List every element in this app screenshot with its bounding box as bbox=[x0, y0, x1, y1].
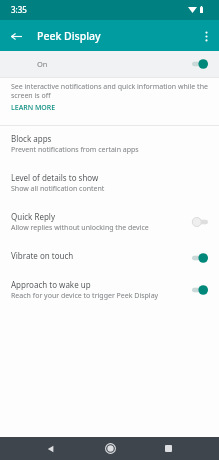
staticText: Prevent notifications from certain apps bbox=[11, 145, 139, 155]
staticText: Allow replies without unlocking the devi… bbox=[11, 223, 149, 233]
staticText: Approach to wake up bbox=[11, 279, 91, 290]
staticText: Show all notification content bbox=[11, 184, 105, 194]
button[interactable]: Navigate up bbox=[3, 23, 29, 49]
staticText: On bbox=[37, 59, 48, 69]
staticText: Vibrate on touch bbox=[11, 250, 74, 261]
button[interactable]: Back bbox=[31, 437, 71, 460]
button[interactable]: On bbox=[0, 51, 219, 77]
staticText: Block apps bbox=[11, 133, 52, 144]
button[interactable]: Quick Reply bbox=[0, 204, 219, 243]
staticText: See interactive notifications and quick … bbox=[11, 82, 208, 100]
staticText: Peek Display bbox=[37, 29, 101, 43]
button[interactable]: Block apps bbox=[0, 126, 219, 165]
staticText: Reach for your device to trigger Peek Di… bbox=[11, 291, 159, 301]
staticText: 3:35 bbox=[11, 4, 27, 15]
staticText: Quick Reply bbox=[11, 211, 55, 222]
button[interactable]: Approach to wake up bbox=[0, 272, 219, 311]
button[interactable]: LEARN MORE bbox=[11, 103, 56, 113]
button[interactable]: Recent apps bbox=[148, 437, 188, 460]
button[interactable]: Level of details to show bbox=[0, 165, 219, 204]
button[interactable]: Home bbox=[90, 437, 130, 460]
button[interactable]: Vibrate on touch bbox=[0, 243, 219, 272]
staticText: Level of details to show bbox=[11, 172, 99, 183]
button[interactable]: More options bbox=[193, 23, 219, 49]
